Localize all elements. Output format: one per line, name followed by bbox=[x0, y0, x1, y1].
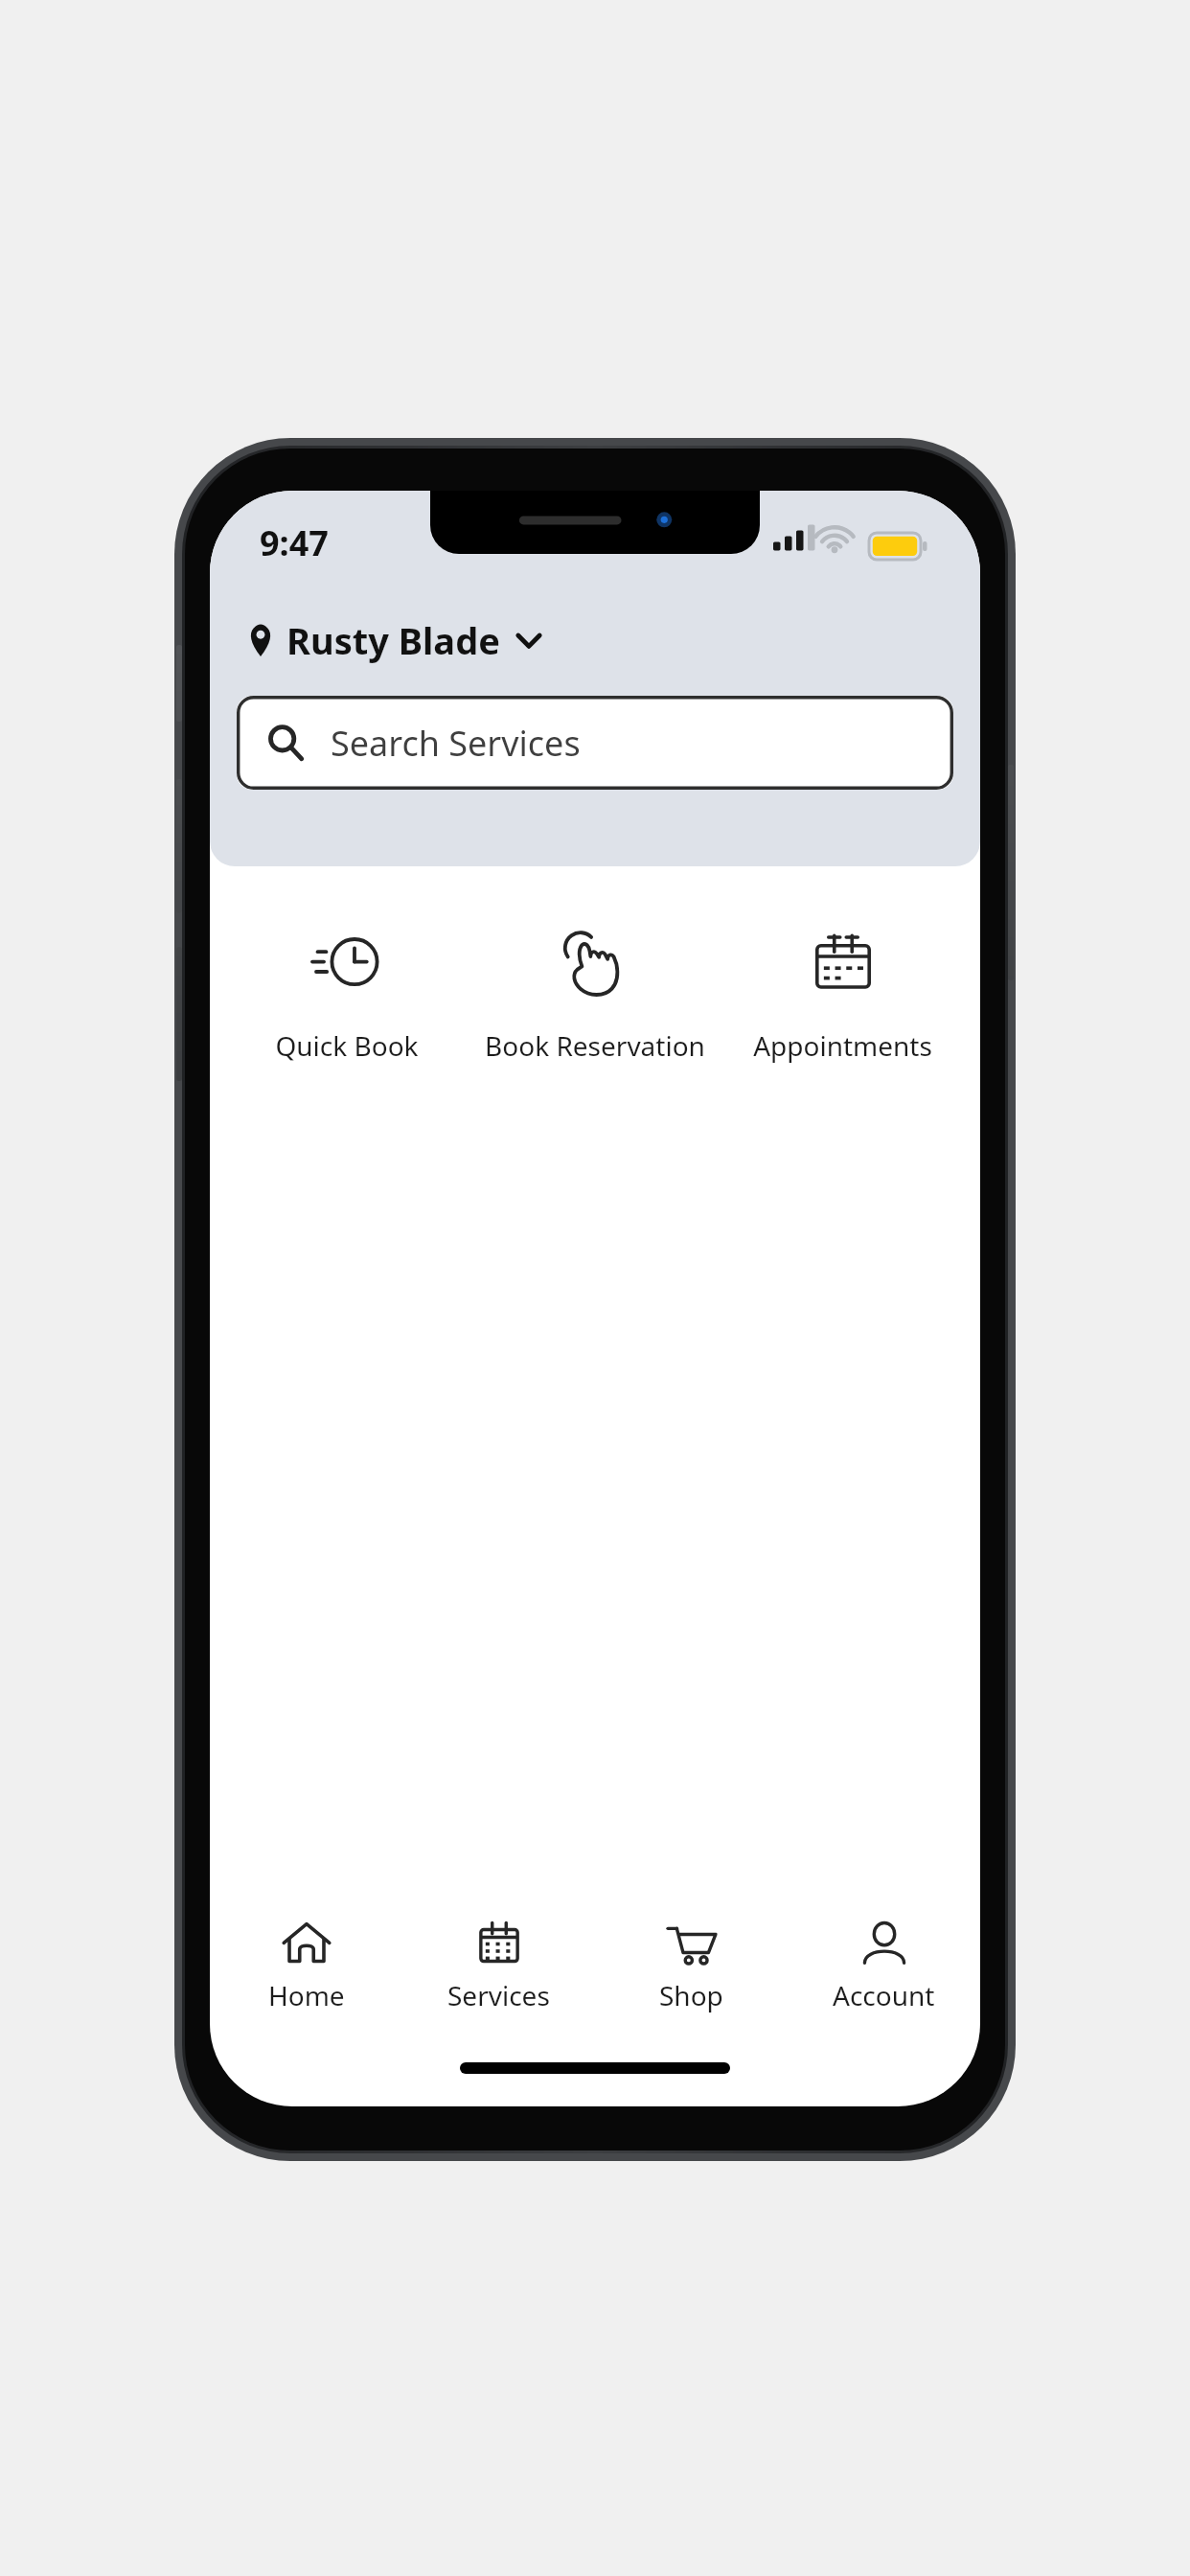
button[interactable]: Home bbox=[210, 1899, 402, 2030]
button[interactable]: Rusty Blade bbox=[239, 608, 552, 673]
staticText: Home bbox=[268, 1977, 345, 2013]
staticText: Rusty Blade bbox=[286, 615, 500, 665]
staticText: Appointments bbox=[753, 1027, 932, 1064]
staticText: Book Reservation bbox=[485, 1027, 705, 1064]
staticText: Search Services bbox=[331, 720, 581, 767]
staticText: Account bbox=[833, 1977, 935, 2013]
staticText: Quick Book bbox=[275, 1027, 419, 1064]
button[interactable]: Search Services bbox=[237, 696, 953, 790]
button[interactable]: Quick Book bbox=[223, 916, 470, 1073]
staticText: Services bbox=[447, 1977, 550, 2013]
button[interactable]: Account bbox=[788, 1899, 980, 2030]
staticText: Shop bbox=[659, 1977, 723, 2013]
button[interactable]: Appointments bbox=[719, 916, 967, 1073]
staticText: 9:47 bbox=[260, 519, 329, 566]
button[interactable]: Services bbox=[402, 1899, 595, 2030]
button[interactable]: Shop bbox=[595, 1899, 788, 2030]
button[interactable]: Book Reservation bbox=[470, 916, 719, 1073]
